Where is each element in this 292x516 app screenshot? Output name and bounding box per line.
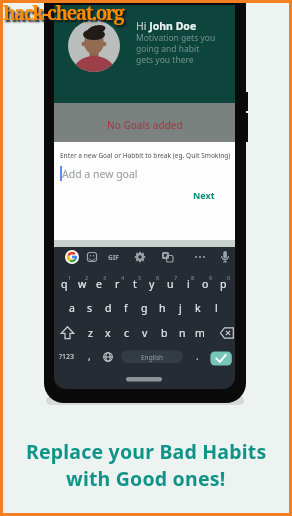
staticText: 0	[227, 274, 231, 281]
staticText: e	[96, 277, 102, 291]
staticText: 2	[85, 274, 89, 281]
button[interactable]: t	[125, 275, 145, 293]
staticText: Hi John Doe	[136, 19, 197, 33]
button[interactable]: x	[98, 324, 118, 342]
button[interactable]: y	[142, 275, 162, 293]
staticText: f	[124, 301, 128, 315]
button[interactable]: o	[195, 275, 215, 293]
staticText: with Good ones!	[66, 465, 226, 492]
staticText: h	[159, 301, 166, 315]
button[interactable]: s	[80, 299, 100, 317]
staticText: 3	[103, 274, 107, 281]
staticText: ?123	[59, 352, 75, 362]
staticText: No Goals added	[107, 118, 183, 132]
button[interactable]	[54, 142, 235, 240]
button[interactable]: GIF	[103, 248, 123, 266]
button[interactable]: q	[54, 275, 74, 293]
staticText: v	[142, 326, 148, 340]
staticText: r	[115, 277, 120, 291]
staticText: b	[161, 326, 168, 340]
button[interactable]: e	[89, 275, 109, 293]
button[interactable]: z	[80, 324, 100, 342]
staticText: w	[78, 277, 87, 291]
staticText: n	[179, 326, 186, 340]
button[interactable]: p	[213, 275, 233, 293]
staticText: j	[179, 301, 182, 315]
button[interactable]: c	[117, 324, 137, 342]
staticText: 7	[174, 274, 178, 281]
button[interactable]: m	[190, 324, 210, 342]
staticText: 6	[156, 274, 160, 281]
staticText: k	[195, 301, 201, 315]
staticText: s	[87, 301, 93, 315]
staticText: 9	[209, 274, 213, 281]
staticText: Next	[193, 189, 215, 201]
staticText: 1	[68, 274, 72, 281]
staticText: 8	[191, 274, 195, 281]
staticText: GIF	[108, 253, 119, 262]
button[interactable]: a	[62, 299, 82, 317]
staticText: Enter a new Goal or Habbit to break (eg.…	[60, 151, 231, 160]
staticText: Replace your Bad Habits	[26, 438, 267, 465]
staticText: x	[105, 326, 111, 340]
staticText: a	[69, 301, 75, 315]
staticText: q	[61, 277, 68, 291]
staticText: English	[141, 353, 164, 362]
staticText: ,	[88, 349, 91, 363]
staticText: g	[141, 301, 148, 315]
button[interactable]: g	[134, 299, 154, 317]
button[interactable]: ?123	[57, 348, 77, 366]
staticText: l	[215, 301, 218, 315]
staticText: t	[133, 277, 137, 291]
staticText: d	[105, 301, 112, 315]
button[interactable]: ,	[79, 347, 99, 365]
button[interactable]: h	[152, 299, 172, 317]
button[interactable]: u	[160, 275, 180, 293]
staticText: p	[220, 277, 227, 291]
button[interactable]: f	[116, 299, 136, 317]
button[interactable]: j	[170, 299, 190, 317]
staticText: u	[167, 277, 174, 291]
button[interactable]: w	[72, 275, 92, 293]
button[interactable]: d	[98, 299, 118, 317]
staticText: Add a new goal	[62, 167, 138, 181]
button[interactable]: n	[172, 324, 192, 342]
staticText: Motivation gets you going and habit gets…	[136, 32, 216, 65]
button[interactable]: l	[206, 299, 226, 317]
button[interactable]: v	[135, 324, 155, 342]
staticText: c	[124, 326, 130, 340]
staticText: 5	[138, 274, 142, 281]
staticText: .	[196, 349, 199, 363]
button[interactable]: b	[154, 324, 174, 342]
button[interactable]: k	[188, 299, 208, 317]
staticText: y	[149, 277, 155, 291]
staticText: hack-cheat.org	[3, 0, 124, 26]
button[interactable]: r	[107, 275, 127, 293]
staticText: z	[88, 326, 93, 340]
button[interactable]: English	[121, 351, 183, 364]
staticText: o	[202, 277, 209, 291]
button[interactable]: .	[187, 347, 207, 365]
staticText: 4	[121, 274, 125, 281]
button[interactable]: i	[178, 275, 198, 293]
staticText: m	[195, 326, 205, 340]
staticText: i	[187, 277, 190, 291]
button[interactable]: Next	[191, 187, 217, 202]
